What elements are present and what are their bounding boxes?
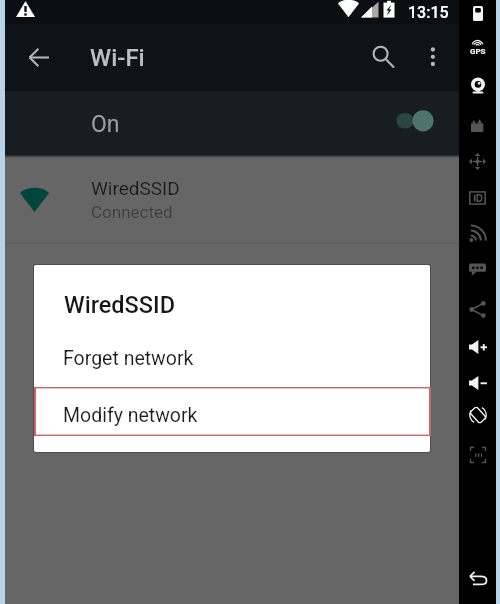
- staticText: Connected: [91, 202, 173, 222]
- button[interactable]: Rotate: [459, 398, 496, 432]
- button[interactable]: More options: [414, 33, 458, 77]
- staticText: 13:15: [408, 3, 449, 22]
- button[interactable]: Navigate up: [15, 33, 63, 81]
- button[interactable]: Phone ID: [459, 181, 496, 215]
- staticText: Modify network: [63, 404, 198, 427]
- button[interactable]: Forget network: [34, 335, 430, 384]
- button[interactable]: Modify network: [34, 392, 430, 441]
- button[interactable]: On: [5, 91, 459, 154]
- button[interactable]: GPS location: [459, 31, 496, 65]
- button[interactable]: WiredSSID: [5, 158, 459, 240]
- button[interactable]: Screenshot: [459, 438, 496, 472]
- button[interactable]: Cellular: [459, 108, 496, 142]
- button[interactable]: Share: [459, 292, 496, 326]
- staticText: On: [91, 111, 120, 138]
- button[interactable]: Cellular signal: [459, 216, 496, 250]
- staticText: GPS: [470, 47, 486, 56]
- button[interactable]: Camera: [459, 69, 496, 103]
- staticText: Wi-Fi: [90, 44, 145, 72]
- button[interactable]: Messages: [459, 251, 496, 285]
- button[interactable]: Volume down: [459, 366, 496, 400]
- button[interactable]: Back: [459, 565, 496, 591]
- button[interactable]: Search: [357, 33, 405, 81]
- button[interactable]: Volume up: [459, 330, 496, 364]
- staticText: WiredSSID: [91, 177, 180, 199]
- staticText: WiredSSID: [64, 291, 176, 319]
- button[interactable]: Device: [459, 0, 496, 30]
- button[interactable]: Directional pad: [459, 144, 496, 178]
- staticText: Forget network: [63, 347, 194, 370]
